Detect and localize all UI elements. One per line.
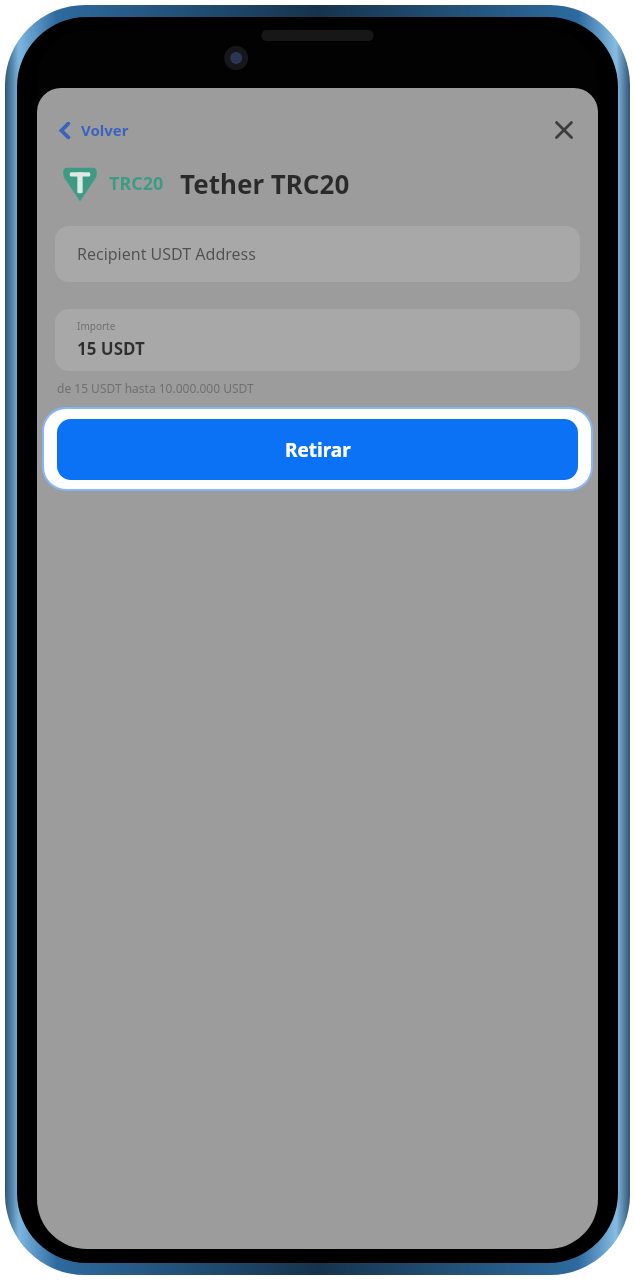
staticText: Retirar bbox=[285, 437, 351, 463]
staticText: Importe bbox=[77, 319, 116, 333]
staticText: de 15 USDT hasta 10.000.000 USDT bbox=[57, 380, 254, 396]
button[interactable]: Recipient USDT Address bbox=[55, 226, 580, 282]
staticText: Volver bbox=[81, 120, 129, 140]
button[interactable]: Cerrar bbox=[546, 112, 582, 148]
staticText: TRC20 bbox=[109, 171, 164, 196]
button[interactable]: Volver bbox=[53, 114, 135, 146]
staticText: 15 USDT bbox=[77, 337, 145, 360]
staticText: Recipient USDT Address bbox=[77, 243, 256, 265]
button[interactable]: Retirar bbox=[57, 419, 578, 480]
staticText: Tether TRC20 bbox=[180, 166, 350, 201]
button[interactable]: Importe bbox=[55, 309, 580, 371]
